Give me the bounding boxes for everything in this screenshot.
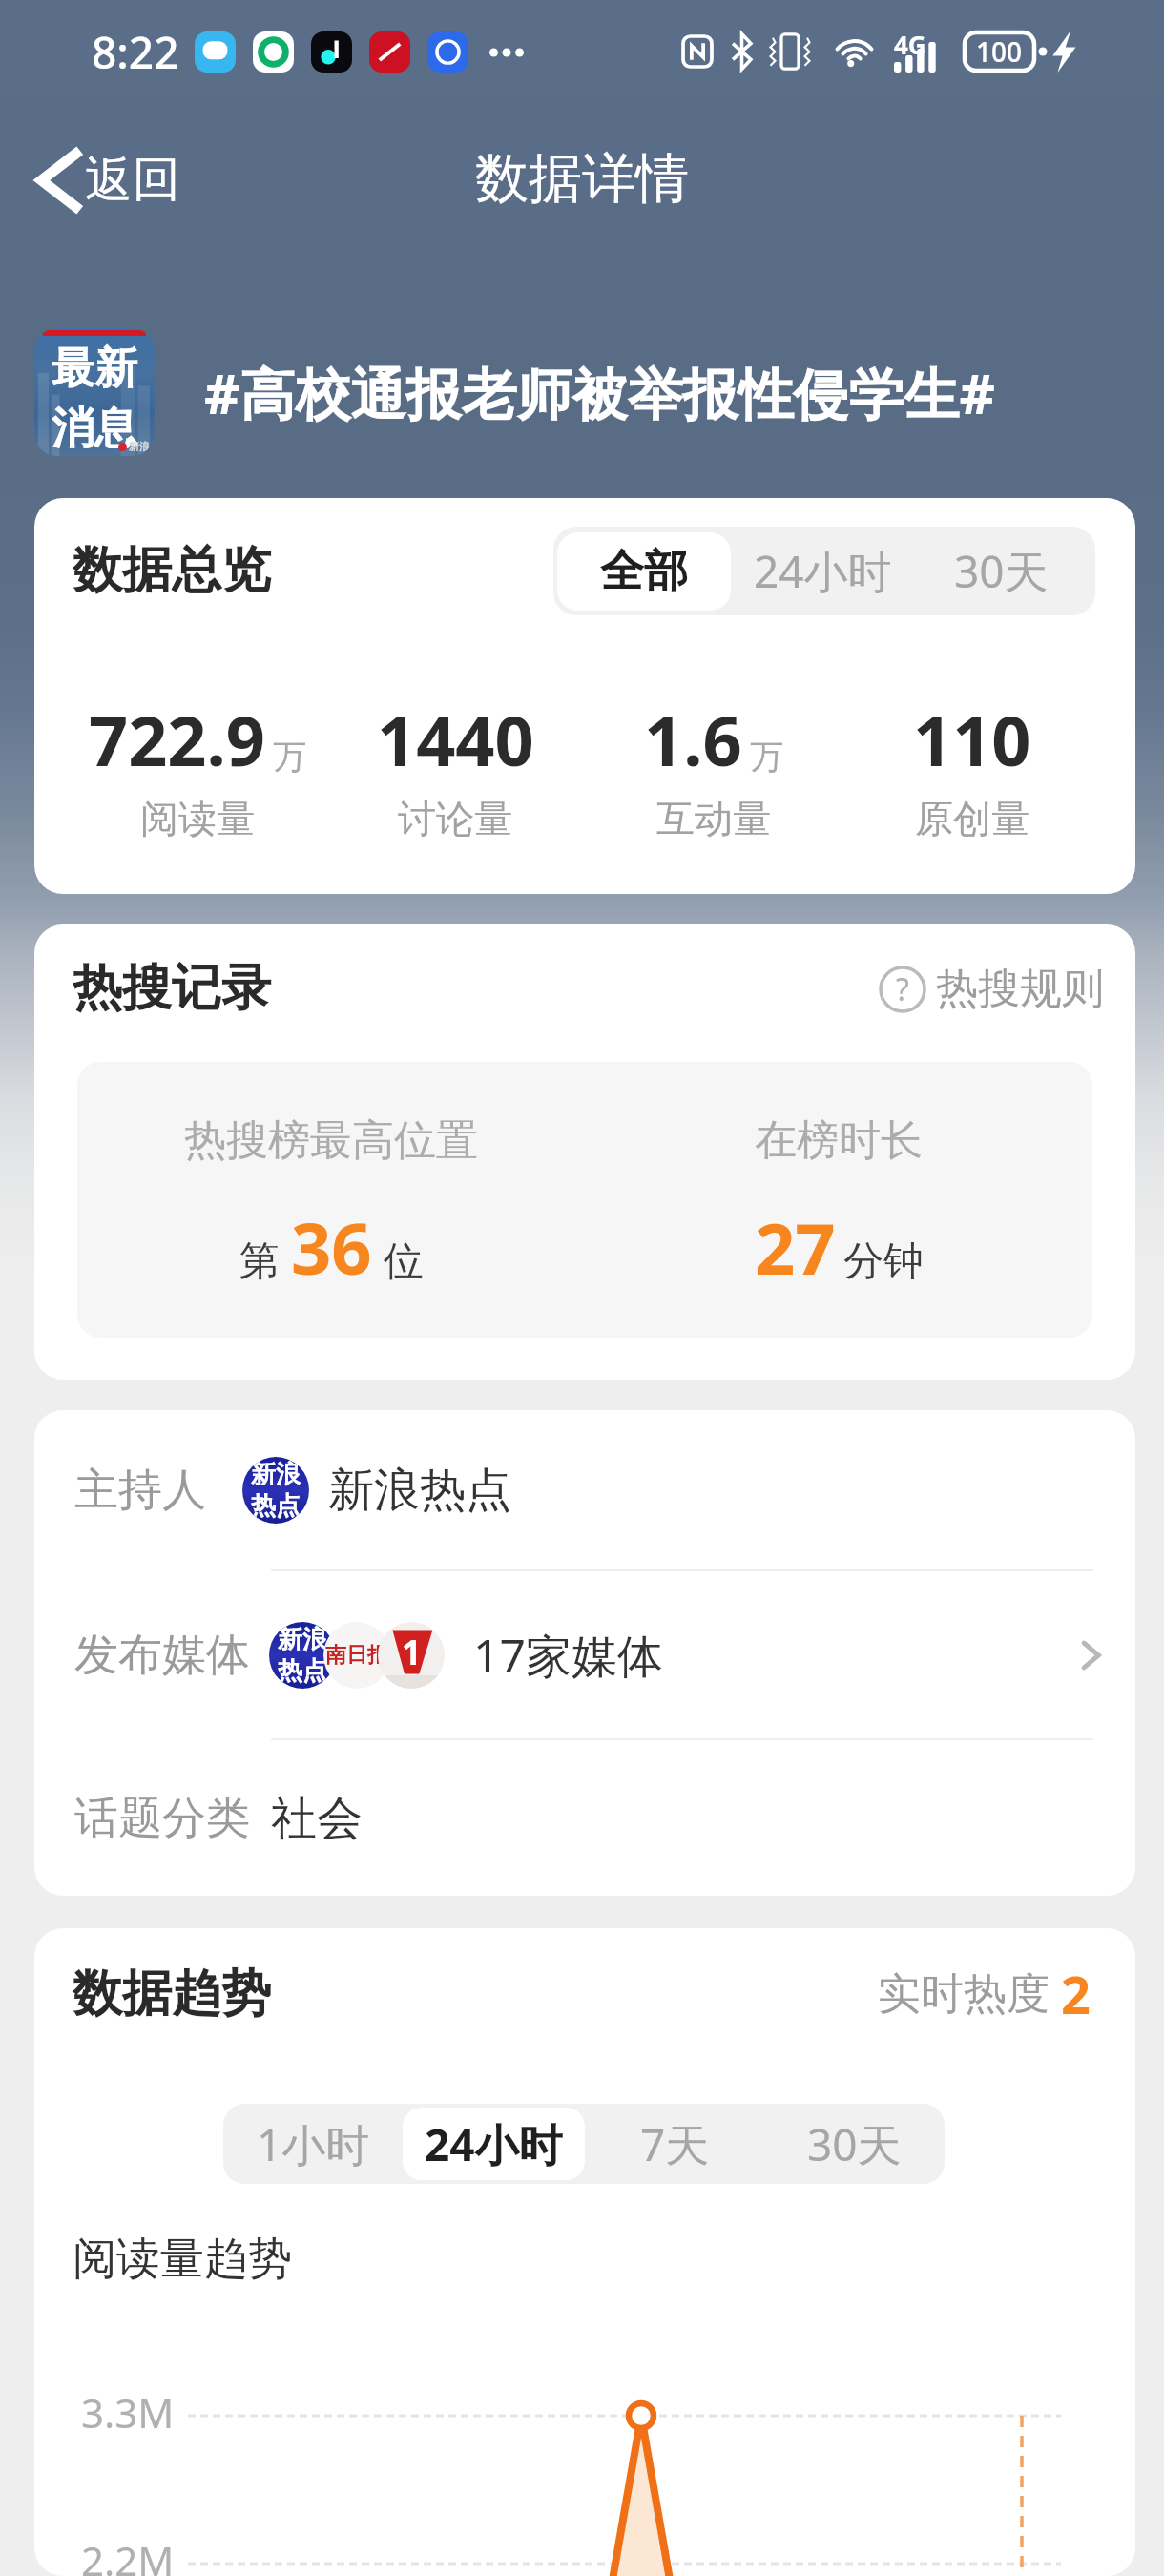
button[interactable]: 1小时 [223, 2104, 403, 2184]
button[interactable]: 30天 [910, 527, 1091, 615]
staticText: 互动量 [656, 795, 771, 842]
button[interactable]: Back [25, 140, 192, 219]
staticText: 南日报 [325, 1642, 388, 1669]
staticText: 全部 [600, 544, 688, 599]
staticText: 722.9 [89, 693, 265, 786]
staticText: 在榜时长 [755, 1114, 923, 1167]
staticText: 新浪 [251, 1459, 301, 1490]
staticText: 数据详情 [475, 145, 689, 213]
staticText: 新浪 [278, 1624, 327, 1655]
staticText: 27 [755, 1199, 836, 1296]
staticText: 1 [402, 1629, 422, 1675]
staticText: 最新 [52, 342, 137, 396]
staticText: 万 [750, 736, 783, 778]
button[interactable]: 7天 [585, 2104, 764, 2184]
staticText: 2 [1061, 1959, 1091, 2029]
staticText: 位 [384, 1236, 424, 1287]
staticText: #高校通报老师被举报性侵学生# [204, 355, 995, 430]
staticText: ? [896, 968, 909, 1010]
button[interactable]: 主持人 [34, 1410, 1135, 1569]
staticText: 1440 [377, 693, 534, 786]
staticText: 原创量 [915, 795, 1029, 842]
staticText: 110 [913, 693, 1031, 786]
staticText: 新浪 [129, 440, 150, 453]
staticText: 热搜规则 [936, 963, 1104, 1015]
button[interactable]: 全部 [557, 532, 731, 611]
button[interactable]: 24小时 [735, 527, 910, 615]
staticText: 24小时 [425, 2114, 563, 2174]
staticText: 17家媒体 [473, 1624, 663, 1687]
staticText: 主持人 [74, 1463, 206, 1518]
staticText: 1.6 [644, 693, 742, 786]
staticText: 万 [273, 736, 306, 778]
staticText: 30天 [807, 2114, 902, 2174]
staticText: 讨论量 [398, 795, 512, 842]
staticText: 热点 [278, 1655, 327, 1687]
staticText: 3.3M [81, 2385, 175, 2440]
staticText: 4G [894, 28, 926, 61]
staticText: 30天 [954, 541, 1049, 601]
button[interactable]: 最新 [34, 328, 1164, 456]
staticText: 新浪热点 [328, 1462, 511, 1519]
staticText: 返回 [85, 150, 180, 210]
staticText: 热搜榜最高位置 [184, 1114, 478, 1167]
staticText: 数据趋势 [73, 1963, 271, 2025]
button[interactable]: 发布媒体 [34, 1571, 1135, 1738]
staticText: 发布媒体 [74, 1628, 250, 1683]
staticText: 100 [976, 33, 1023, 70]
staticText: 消息 [52, 402, 137, 456]
staticText: 话题分类 [74, 1791, 250, 1846]
button[interactable]: 30天 [764, 2104, 945, 2184]
staticText: 1小时 [257, 2114, 370, 2174]
staticText: 7天 [640, 2114, 710, 2174]
staticText: 阅读量 [140, 795, 255, 842]
staticText: 社会 [271, 1790, 363, 1847]
staticText: 分钟 [843, 1236, 924, 1287]
button[interactable]: 24小时 [403, 2108, 585, 2180]
staticText: 2.2M [81, 2533, 175, 2576]
staticText: 24小时 [754, 541, 892, 601]
staticText: 第 [239, 1236, 280, 1287]
staticText: 实时热度 [878, 1967, 1050, 2022]
staticText: 8:22 [92, 22, 179, 82]
button[interactable]: ? [871, 955, 1112, 1023]
staticText: 阅读量趋势 [73, 2232, 292, 2287]
staticText: 36 [291, 1199, 372, 1296]
staticText: 热搜记录 [73, 957, 271, 1020]
staticText: 热点 [251, 1490, 301, 1522]
staticText: 数据总览 [73, 539, 271, 602]
